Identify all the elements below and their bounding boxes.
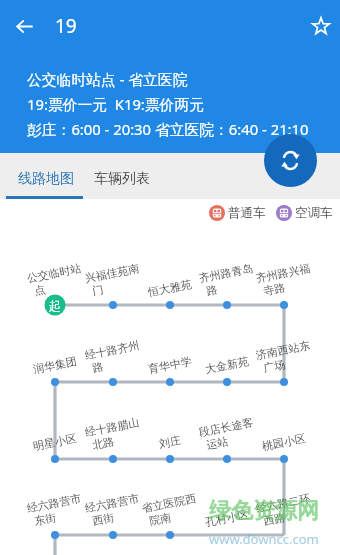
staticText: 省立医院西 <box>141 491 197 515</box>
staticText: 路 <box>91 359 105 375</box>
staticText: 线路地图 <box>18 170 74 188</box>
staticText: 运站 <box>205 434 229 452</box>
staticText: 彭庄：6:00 - 20:30 省立医院：6:40 - 21:10 <box>27 119 309 139</box>
staticText: 门 <box>91 282 105 298</box>
staticText: 段店长途客 <box>198 415 254 439</box>
staticText: 19 <box>55 13 77 39</box>
staticText: 公交临时站 <box>26 261 82 285</box>
staticText: 润华集团 <box>32 354 78 376</box>
staticText: 兴福佳苑南 <box>84 261 140 285</box>
staticText: 恒大雅苑 <box>147 277 193 299</box>
button[interactable]: Refresh <box>264 134 317 187</box>
staticText: 广场 <box>262 357 286 375</box>
staticText: 院南 <box>148 510 172 528</box>
staticText: 刘庄 <box>158 433 182 451</box>
button[interactable]: 普通车 <box>209 205 266 221</box>
staticText: 路 <box>205 282 219 298</box>
staticText: 经六路二环 <box>255 491 311 515</box>
staticText: 普通车 <box>228 205 266 221</box>
staticText: 孔村小区 <box>204 507 250 529</box>
staticText: 寺路 <box>262 280 286 298</box>
button[interactable]: 线路地图 <box>7 157 85 200</box>
staticText: 19:票价一元 K19:票价两元 <box>27 94 205 114</box>
staticText: 齐州路青岛 <box>198 261 254 285</box>
button[interactable]: 空调车 <box>276 205 333 221</box>
staticText: www.downcc.com <box>209 530 319 548</box>
button[interactable]: Start station <box>44 294 66 316</box>
staticText: 明星小区 <box>32 431 78 453</box>
button[interactable]: Favorite <box>304 9 338 43</box>
button[interactable]: 车辆列表 <box>83 157 161 200</box>
staticText: 经十路腊山 <box>84 415 140 439</box>
staticText: 大金新苑 <box>204 354 250 376</box>
staticText: 济南西站东 <box>255 338 311 362</box>
staticText: 公交临时站点 - 省立医院 <box>27 69 188 89</box>
staticText: 经十路齐州 <box>84 338 140 362</box>
staticText: 齐州路兴福 <box>255 261 311 285</box>
staticText: 起 <box>49 298 61 313</box>
staticText: 车辆列表 <box>94 170 150 188</box>
staticText: 经六路营市 <box>84 491 140 515</box>
staticText: 西路 <box>262 510 286 528</box>
button[interactable]: Back <box>8 10 41 43</box>
staticText: 经六路营市 <box>26 491 82 515</box>
staticText: 点 <box>33 282 47 298</box>
staticText: 东街 <box>33 510 57 528</box>
staticText: 育华中学 <box>147 354 193 376</box>
staticText: 西街 <box>91 510 115 528</box>
staticText: 绿色资源网 <box>209 497 319 525</box>
staticText: 空调车 <box>295 205 333 221</box>
staticText: 北路 <box>91 434 115 452</box>
staticText: 桃园小区 <box>261 431 307 453</box>
